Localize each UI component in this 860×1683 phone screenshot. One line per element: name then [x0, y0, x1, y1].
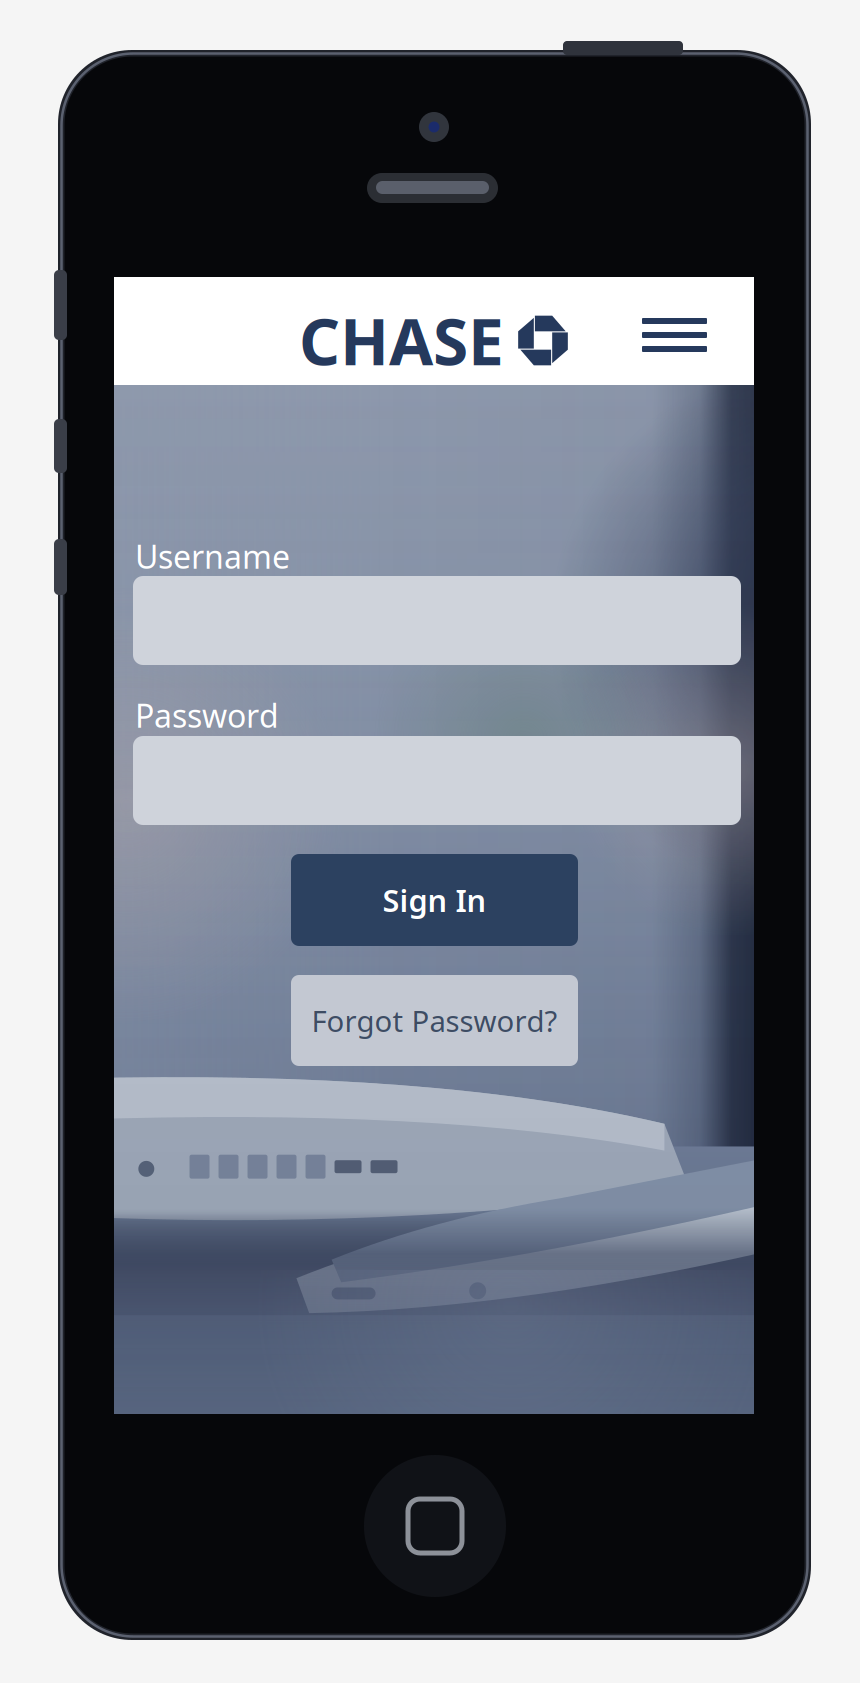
- staticText: Sign In: [382, 880, 486, 920]
- button[interactable]: Forgot Password?: [291, 975, 578, 1066]
- button[interactable]: Sign In: [291, 854, 578, 946]
- staticText: Forgot Password?: [311, 1001, 557, 1040]
- staticText: Password: [135, 694, 279, 736]
- staticText: Username: [135, 535, 290, 577]
- button[interactable]: Menu: [628, 304, 721, 366]
- staticText: CHASE: [299, 298, 504, 383]
